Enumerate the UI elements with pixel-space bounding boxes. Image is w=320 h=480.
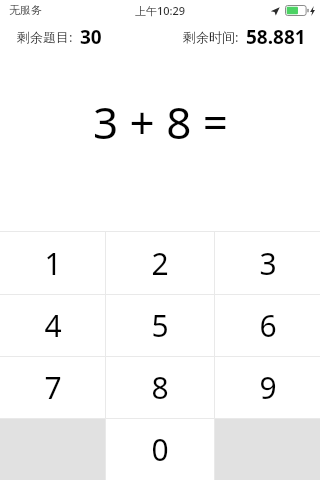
staticText: 剩余题目: [17,28,73,46]
staticText: 30 [80,24,102,50]
staticText: 4 [44,305,62,346]
staticText: 2 [151,243,169,284]
staticText: 3 [259,243,277,284]
button[interactable]: 3 [215,232,320,294]
staticText: 58.881 [246,24,306,50]
staticText: 7 [44,367,62,408]
staticText: 6 [259,305,277,346]
other: Battery charging [285,5,309,16]
button[interactable]: 7 [0,357,105,418]
button[interactable]: 1 [0,232,105,294]
staticText: 剩余时间: [183,28,239,46]
staticText: 无服务 [9,3,42,17]
button[interactable]: 5 [106,295,214,356]
staticText: 3 + 8 = [93,92,228,152]
button[interactable]: 8 [106,357,214,418]
button[interactable]: 2 [106,232,214,294]
button[interactable]: 9 [215,357,320,418]
button[interactable]: 6 [215,295,320,356]
staticText: 5 [151,305,169,346]
button[interactable]: 0 [106,419,214,480]
staticText: 1 [44,243,62,284]
staticText: 9 [259,367,277,408]
staticText: 0 [151,429,169,470]
button[interactable]: 4 [0,295,105,356]
staticText: 8 [151,367,169,408]
other: Location services active [270,6,280,16]
staticText: 上午10:29 [135,3,186,18]
